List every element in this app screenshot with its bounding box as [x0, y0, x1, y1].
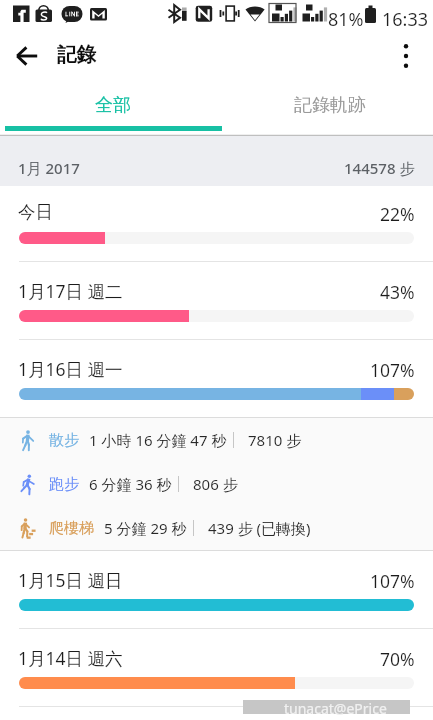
- button[interactable]: 全部: [5, 83, 221, 127]
- staticText: 1月 2017: [18, 158, 80, 178]
- staticText: 43%: [380, 280, 415, 304]
- staticText: 1月15日 週日: [18, 568, 123, 592]
- staticText: 7810 步: [248, 430, 302, 450]
- staticText: 70%: [380, 647, 415, 671]
- button[interactable]: 爬樓梯: [0, 506, 433, 550]
- button[interactable]: 跑步: [0, 462, 433, 506]
- button[interactable]: 記錄軌跡: [221, 83, 433, 127]
- staticText: 1 小時 16 分鐘 47 秒: [89, 430, 227, 450]
- staticText: 1月17日 週二: [18, 279, 123, 303]
- button[interactable]: Back: [5, 34, 49, 78]
- staticText: 散步: [49, 431, 79, 450]
- button[interactable]: 1月17日 週二: [0, 264, 433, 339]
- button[interactable]: 1月16日 週一: [0, 342, 433, 417]
- staticText: 16:33: [382, 7, 429, 32]
- staticText: 144578 步: [344, 158, 415, 178]
- staticText: 439 步 (已轉換): [208, 518, 311, 538]
- staticText: 1月16日 週一: [18, 357, 123, 381]
- staticText: 806 步: [193, 474, 238, 494]
- staticText: 5 分鐘 29 秒: [104, 518, 187, 538]
- staticText: 22%: [380, 202, 415, 226]
- staticText: 107%: [370, 358, 415, 382]
- staticText: 記錄軌跡: [294, 94, 366, 117]
- staticText: 107%: [370, 569, 415, 593]
- staticText: 記錄: [57, 42, 96, 67]
- button[interactable]: More options: [384, 34, 428, 78]
- staticText: 今日: [18, 201, 53, 223]
- staticText: tunacat@ePrice: [284, 699, 387, 718]
- staticText: 6 分鐘 36 秒: [89, 474, 172, 494]
- staticText: 全部: [95, 94, 131, 117]
- staticText: 爬樓梯: [49, 519, 94, 538]
- staticText: 1月14日 週六: [18, 646, 123, 670]
- staticText: 跑步: [49, 475, 79, 494]
- button[interactable]: 今日: [0, 186, 433, 261]
- button[interactable]: 1月14日 週六: [0, 631, 433, 706]
- button[interactable]: 散步: [0, 418, 433, 462]
- button[interactable]: 1月15日 週日: [0, 553, 433, 628]
- staticText: 81%: [328, 7, 364, 32]
